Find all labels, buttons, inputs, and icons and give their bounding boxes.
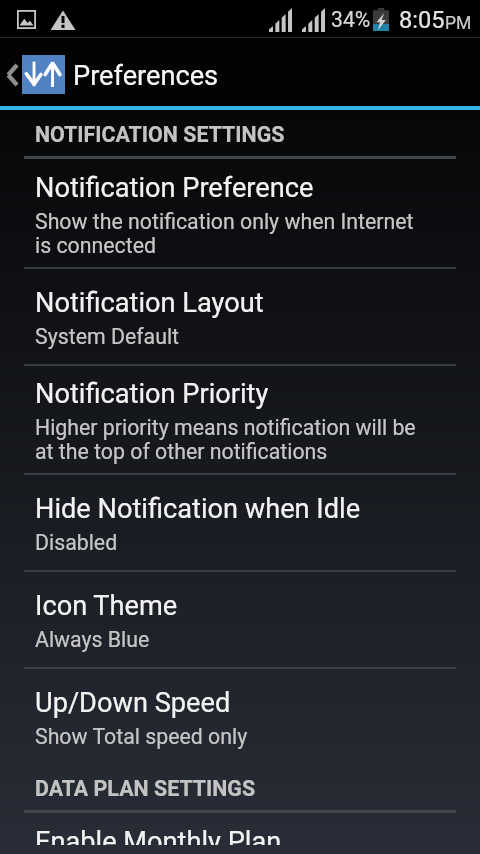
button[interactable]: Navigate up [0,38,480,110]
staticText: PM [445,13,472,34]
staticText: Show Total speed only [35,724,248,749]
button[interactable]: Up/Down Speed [0,669,480,764]
staticText: Preferences [73,60,219,92]
staticText: Notification Priority [35,378,269,410]
staticText: Always Blue [35,627,150,652]
button[interactable]: Hide Notification when Idle [0,475,480,572]
staticText: NOTIFICATION SETTINGS [35,122,285,147]
staticText: Up/Down Speed [35,687,231,719]
staticText: Disabled [35,530,118,555]
staticText: System Default [35,324,180,349]
staticText: Hide Notification when Idle [35,493,361,525]
button[interactable]: Notification Preference [0,160,480,269]
staticText: Notification Layout [35,287,264,319]
staticText: 34% [331,7,371,32]
staticText: Show the notification only when Internet… [35,209,435,258]
button[interactable]: Notification Layout [0,269,480,366]
button[interactable]: Notification Priority [0,366,480,475]
button[interactable]: Icon Theme [0,572,480,669]
staticText: 8:05 [399,6,445,34]
staticText: DATA PLAN SETTINGS [35,776,256,801]
staticText: Higher priority means notification will … [35,415,435,464]
staticText: Enable Monthly Plan [35,826,282,845]
button[interactable]: Enable Monthly Plan [0,814,480,854]
staticText: Icon Theme [35,590,178,622]
staticText: Notification Preference [35,172,314,204]
